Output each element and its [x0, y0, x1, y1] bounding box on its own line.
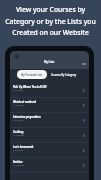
staticText: View your Courses by Category or by the …: [2, 5, 99, 37]
staticText: 6 Courses: [13, 89, 24, 92]
staticText: Cooking: [13, 130, 24, 133]
staticText: Pick Up Where You Left Off: [13, 85, 47, 88]
staticText: My Lists: [44, 60, 55, 64]
staticText: 12 Courses: [13, 104, 25, 107]
staticText: Leo's homework: [13, 145, 34, 148]
button[interactable]: Interview preparation: [10, 113, 89, 128]
button[interactable]: Profile: [14, 54, 19, 59]
staticText: Watch at weekend: [13, 100, 37, 103]
staticText: 4 Courses: [13, 119, 24, 122]
staticText: Interview preparation: [13, 115, 41, 118]
staticText: 3 Courses: [13, 149, 24, 152]
staticText: My Personal Lists: [21, 73, 43, 76]
staticText: Courses By Category: [51, 73, 77, 76]
button[interactable]: Cooking: [10, 128, 89, 143]
staticText: 10 Courses: [13, 134, 25, 137]
button[interactable]: Archive: [10, 158, 89, 173]
button[interactable]: Courses By Category: [48, 70, 79, 79]
button[interactable]: My Personal Lists: [17, 70, 47, 79]
button[interactable]: Leo's homework: [10, 143, 89, 158]
staticText: 22 Courses: [13, 164, 25, 167]
staticText: Archive: [13, 160, 23, 163]
button[interactable]: Watch at weekend: [10, 98, 89, 113]
button[interactable]: Pick Up Where You Left Off: [10, 83, 89, 98]
button[interactable]: More options: [82, 62, 86, 66]
